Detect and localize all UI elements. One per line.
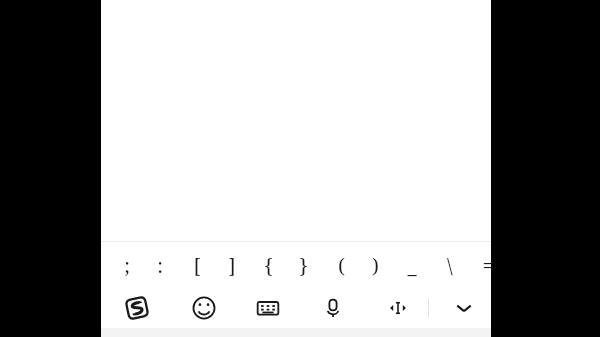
staticText: ] (228, 252, 236, 279)
staticText: ; (124, 252, 130, 279)
button[interactable]: { (251, 242, 285, 288)
button[interactable]: ; (110, 242, 144, 288)
button[interactable]: } (286, 242, 320, 288)
button[interactable]: [ (180, 242, 214, 288)
button[interactable]: Voice input (313, 288, 353, 328)
button[interactable]: Input method settings (117, 288, 157, 328)
button[interactable]: \ (433, 242, 467, 288)
button[interactable]: ] (215, 242, 249, 288)
button[interactable]: = (471, 242, 505, 288)
button[interactable]: Keyboard layout (248, 288, 288, 328)
button[interactable]: Move cursor (378, 288, 418, 328)
staticText: _ (407, 252, 417, 279)
staticText: ( (338, 252, 345, 279)
staticText: { (264, 252, 273, 279)
button[interactable]: ( (324, 242, 358, 288)
button[interactable]: : (143, 242, 177, 288)
button[interactable]: Hide keyboard (444, 288, 484, 328)
staticText: = (482, 252, 494, 279)
staticText: : (157, 252, 163, 279)
staticText: } (299, 252, 308, 279)
button[interactable]: ) (358, 242, 392, 288)
staticText: ) (372, 252, 379, 279)
staticText: \ (447, 252, 453, 279)
staticText: [ (193, 252, 201, 279)
button[interactable]: Emoji (184, 288, 224, 328)
button[interactable]: _ (395, 242, 429, 288)
